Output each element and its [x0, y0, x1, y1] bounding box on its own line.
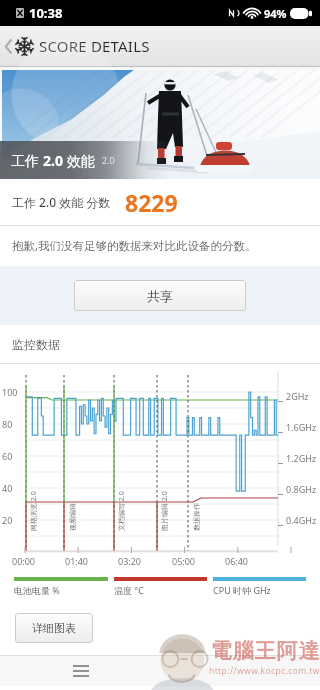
staticText: 工作 — [11, 151, 43, 170]
staticText: 1.2GHz — [286, 452, 317, 464]
staticText: 10:38 — [29, 4, 63, 22]
button[interactable]: Back — [1, 29, 15, 63]
staticText: 06:40 — [225, 555, 249, 567]
staticText: 94% — [264, 6, 287, 21]
button[interactable]: Menu — [61, 656, 101, 686]
staticText: 网格浏览 2.0 — [29, 491, 39, 531]
staticText: 监控数据 — [12, 337, 60, 352]
staticText: 效能 — [63, 151, 95, 170]
staticText: 1.6GHz — [286, 421, 317, 433]
staticText: 0.8GHz — [286, 483, 317, 495]
staticText: 0.4GHz — [286, 514, 317, 526]
staticText: 详细图表 — [32, 621, 76, 635]
staticText: 视频编辑 — [68, 503, 77, 531]
staticText: 2.0 — [43, 151, 63, 170]
staticText: 60 — [2, 450, 13, 462]
staticText: 電腦王阿達 — [210, 638, 320, 664]
staticText: 8229 — [125, 187, 178, 218]
staticText: 2.0 — [102, 154, 115, 166]
staticText: 20 — [2, 514, 13, 526]
staticText: 80 — [2, 418, 13, 430]
staticText: http://www.kocpc.com.tw — [209, 665, 320, 677]
staticText: 05:00 — [172, 555, 196, 567]
staticText: 电池电量 % — [14, 584, 60, 596]
staticText: SCORE DETAILS — [39, 36, 150, 56]
staticText: 数据操作 — [192, 503, 201, 531]
button[interactable]: 详细图表 — [15, 613, 93, 643]
staticText: 100 — [2, 386, 18, 398]
staticText: 文档编写 2.0 — [117, 491, 127, 531]
staticText: 图片编辑 2.0 — [160, 491, 170, 531]
staticText: 40 — [2, 482, 13, 494]
staticText: CPU 时钟 GHz — [213, 584, 271, 596]
staticText: 抱歉,我们没有足够的数据来对比此设备的分数。 — [12, 238, 257, 254]
staticText: 00:00 — [12, 555, 36, 567]
staticText: 共享 — [147, 288, 173, 304]
button[interactable]: 共享 — [74, 280, 246, 311]
staticText: 工作 2.0 效能 分数 — [12, 194, 111, 210]
staticText: 01:40 — [65, 555, 89, 567]
staticText: 温度 °C — [114, 584, 144, 596]
staticText: 03:20 — [118, 555, 142, 567]
staticText: 2GHz — [286, 390, 309, 402]
